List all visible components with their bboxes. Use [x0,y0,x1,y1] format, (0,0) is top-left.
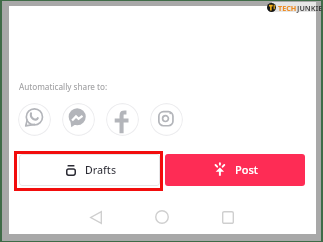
staticText: Automatically share to: [19,81,108,92]
button[interactable]: Recent apps [214,203,242,231]
button[interactable]: Post [165,154,305,186]
button[interactable]: Share to Facebook [106,103,139,136]
staticText: Post [235,162,258,177]
staticText: Drafts [85,163,117,177]
button[interactable]: Share to Messenger [62,103,95,136]
button[interactable]: Share to Instagram [150,103,183,136]
button[interactable]: Back [82,203,110,231]
button[interactable]: Share to WhatsApp [18,103,51,136]
button[interactable]: Home [148,203,176,231]
button[interactable]: Drafts [19,154,160,186]
staticText: JUNKIE [297,3,323,13]
staticText: TECH [278,3,297,13]
